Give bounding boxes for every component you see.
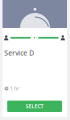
staticText: 1 hr (10, 85, 19, 92)
staticText: SELECT (26, 103, 44, 110)
staticText: Service D (4, 48, 34, 57)
button[interactable]: SELECT (7, 101, 62, 112)
